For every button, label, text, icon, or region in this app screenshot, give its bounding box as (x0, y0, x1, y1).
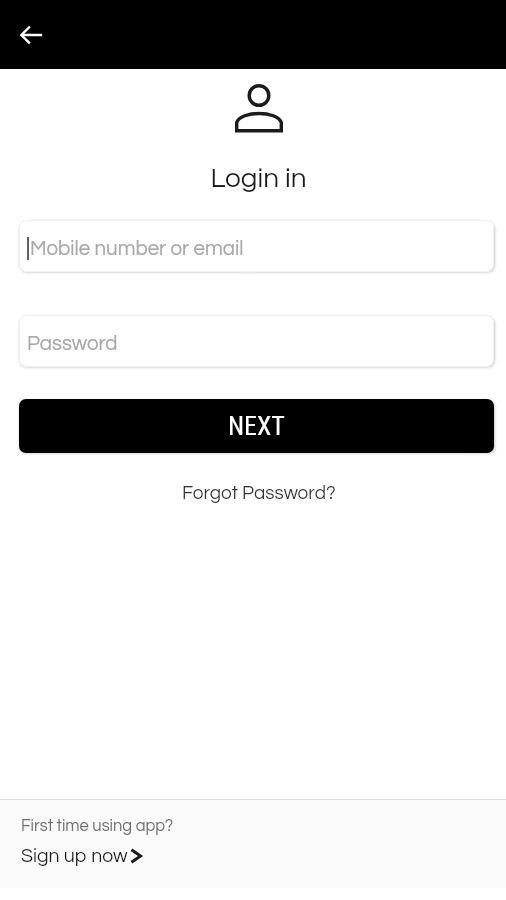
staticText: First time using app? (21, 817, 174, 834)
staticText: Password (27, 333, 118, 354)
button[interactable]: NEXT (19, 399, 494, 453)
staticText: Sign up now (21, 846, 128, 866)
staticText: Mobile number or email (30, 238, 244, 259)
button[interactable]: Password (19, 315, 494, 367)
button[interactable]: Mobile number or email (19, 220, 494, 272)
staticText: Login in (11, 164, 506, 193)
staticText: Forgot Password? (182, 483, 336, 503)
staticText: NEXT (228, 411, 285, 441)
button[interactable]: Back (11, 15, 51, 55)
button[interactable]: Forgot Password? (174, 479, 344, 507)
button[interactable]: Sign up now (15, 843, 148, 869)
